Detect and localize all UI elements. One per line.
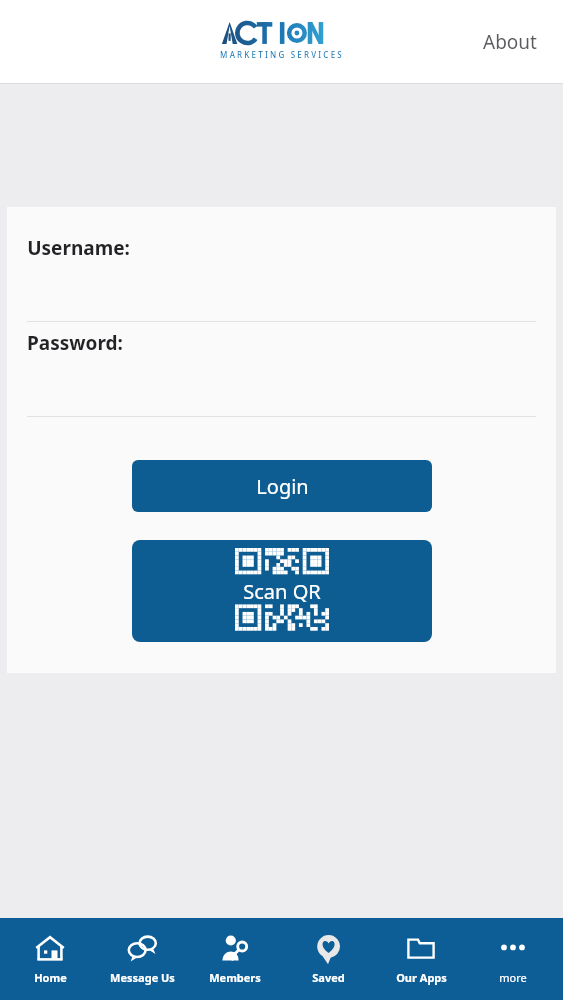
button[interactable]: Password: [7, 322, 556, 417]
button[interactable]: Scan QR [132, 540, 432, 642]
staticText: more [499, 970, 527, 985]
staticText: MARKETING SERVICES [220, 49, 344, 60]
button[interactable]: About [475, 23, 545, 61]
staticText: Our Apps [396, 970, 447, 985]
staticText: Password: [27, 330, 123, 356]
staticText: Saved [312, 970, 345, 985]
button[interactable]: Login [132, 460, 432, 512]
button[interactable]: Home [7, 918, 93, 1000]
staticText: Message Us [110, 970, 175, 985]
staticText: Username: [27, 235, 130, 261]
staticText: Members [209, 970, 261, 985]
button[interactable]: Saved [285, 918, 371, 1000]
button[interactable]: Members [192, 918, 278, 1000]
staticText: Home [34, 970, 67, 985]
button[interactable]: Username: [7, 227, 556, 322]
staticText: About [483, 29, 537, 55]
staticText: Login [256, 473, 309, 500]
staticText: Scan QR [243, 578, 321, 605]
button[interactable]: Message Us [99, 918, 185, 1000]
button[interactable]: more [470, 918, 556, 1000]
button[interactable]: Our Apps [378, 918, 464, 1000]
